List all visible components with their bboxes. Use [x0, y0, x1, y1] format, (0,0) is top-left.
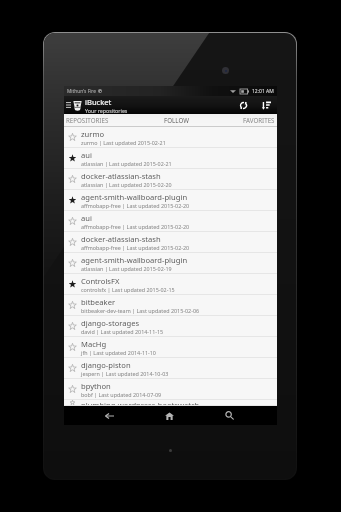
staticText: aui — [81, 213, 92, 223]
staticText: agent-smith-wallboard-plugin — [81, 255, 188, 265]
button[interactable]: Search — [220, 406, 239, 425]
staticText: zurmo | Last updated 2015-02-21 — [81, 139, 166, 146]
staticText: aui — [81, 150, 92, 160]
button[interactable]: Refresh — [235, 97, 251, 113]
staticText: MacHg — [81, 339, 107, 349]
button[interactable]: django-storages — [64, 316, 277, 337]
button[interactable]: plumbing-wordpress-bootswatch — [64, 400, 277, 406]
staticText: atlassian | Last updated 2015-02-20 — [81, 181, 172, 188]
staticText: iBucket — [85, 97, 112, 107]
button[interactable]: ControlsFX — [64, 274, 277, 295]
staticText: bitbeaker — [81, 297, 116, 307]
button[interactable]: MacHg — [64, 337, 277, 358]
button[interactable]: aui — [64, 148, 277, 169]
button[interactable]: FAVORITES — [243, 114, 275, 126]
button[interactable]: docker-atlassian-stash — [64, 169, 277, 190]
button[interactable]: Navigation drawer — [65, 97, 72, 113]
button[interactable]: Home — [160, 406, 179, 425]
staticText: jfh | Last updated 2014-11-10 — [81, 349, 156, 356]
staticText: zurmo — [81, 129, 105, 139]
staticText: affmobapp-free | Last updated 2015-02-20 — [81, 223, 190, 230]
staticText: REPOSITORIES — [66, 116, 109, 124]
staticText: ControlsFX — [81, 276, 120, 286]
staticText: controlsfx | Last updated 2015-02-15 — [81, 286, 175, 293]
button[interactable]: agent-smith-wallboard-plugin — [64, 253, 277, 274]
button[interactable]: bpython — [64, 379, 277, 400]
staticText: atlassian | Last updated 2015-02-19 — [81, 265, 172, 272]
staticText: docker-atlassian-stash — [81, 234, 161, 244]
staticText: FOLLOW — [164, 116, 189, 124]
staticText: affmobapp-free | Last updated 2015-02-20 — [81, 244, 190, 251]
staticText: docker-atlassian-stash — [81, 171, 161, 181]
staticText: Mithun's Fire — [67, 88, 96, 95]
button[interactable]: docker-atlassian-stash — [64, 232, 277, 253]
staticText: FAVORITES — [243, 116, 275, 124]
button[interactable]: django-piston — [64, 358, 277, 379]
button[interactable]: REPOSITORIES — [66, 114, 109, 126]
staticText: bobf | Last updated 2014-07-09 — [81, 391, 162, 398]
button[interactable]: aui — [64, 211, 277, 232]
staticText: Your repositories — [85, 107, 128, 114]
staticText: atlassian | Last updated 2015-02-21 — [81, 160, 172, 167]
staticText: bpython — [81, 381, 111, 391]
staticText: agent-smith-wallboard-plugin — [81, 192, 188, 202]
staticText: bitbeaker-dev-team | Last updated 2015-0… — [81, 307, 200, 314]
button[interactable]: bitbeaker — [64, 295, 277, 316]
staticText: david | Last updated 2014-11-15 — [81, 328, 164, 335]
staticText: django-piston — [81, 360, 131, 370]
button[interactable]: Back — [100, 406, 119, 425]
staticText: django-storages — [81, 318, 140, 328]
staticText: 12:01 AM — [252, 88, 274, 95]
button[interactable]: FOLLOW — [156, 114, 196, 126]
button[interactable]: zurmo — [64, 127, 277, 148]
button[interactable]: Sort — [258, 97, 274, 113]
button[interactable]: agent-smith-wallboard-plugin — [64, 190, 277, 211]
staticText: plumbing-wordpress-bootswatch — [81, 400, 200, 405]
staticText: jespern | Last updated 2014-10-03 — [81, 370, 169, 377]
staticText: affmobapp-free | Last updated 2015-02-20 — [81, 202, 190, 209]
